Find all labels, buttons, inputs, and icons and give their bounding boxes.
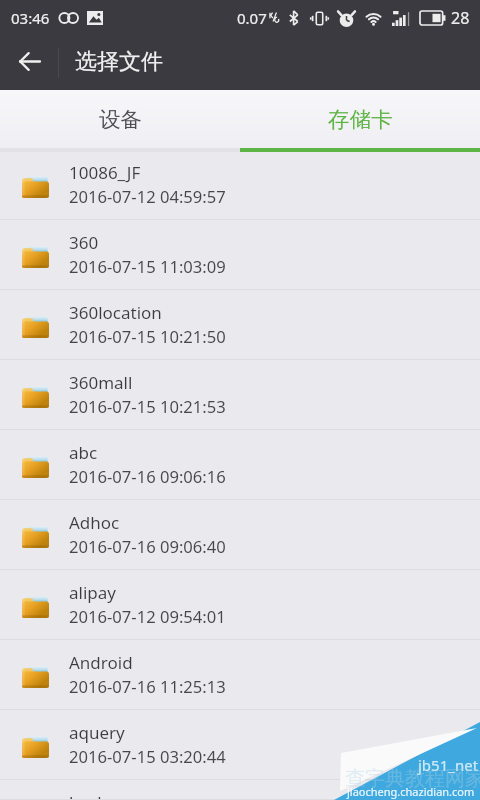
staticText: 2016-07-15 11:03:09 xyxy=(69,255,226,278)
staticText: abc xyxy=(69,441,98,464)
staticText: 2016-07-15 10:21:50 xyxy=(69,325,226,348)
staticText: alipay xyxy=(69,581,116,604)
staticText: 2016-07-16 09:06:16 xyxy=(69,465,226,488)
button[interactable]: 360mall xyxy=(0,360,480,430)
staticText: 03:46 xyxy=(11,8,50,28)
staticText: 360location xyxy=(69,301,162,324)
button[interactable]: 10086_JF xyxy=(0,150,480,220)
staticText: 28 xyxy=(451,7,470,29)
staticText: aquery xyxy=(69,721,125,744)
staticText: Adhoc xyxy=(69,511,120,534)
staticText: 2016-07-16 11:25:13 xyxy=(69,675,226,698)
button[interactable]: Adhoc xyxy=(0,500,480,570)
button[interactable]: 存储卡 xyxy=(240,90,480,150)
staticText: 选择文件 xyxy=(75,48,163,76)
button[interactable]: 360location xyxy=(0,290,480,360)
staticText: 存储卡 xyxy=(328,106,393,133)
button[interactable]: 360 xyxy=(0,220,480,290)
button[interactable]: Android xyxy=(0,640,480,710)
button[interactable]: 设备 xyxy=(0,90,240,150)
button[interactable]: abc xyxy=(0,430,480,500)
button[interactable]: aquery xyxy=(0,710,480,780)
staticText: 2016-07-12 04:59:57 xyxy=(69,185,226,208)
button[interactable]: backup xyxy=(0,780,480,800)
staticText: jiaocheng.chazidian.com xyxy=(347,784,475,799)
staticText: 2016-07-16 09:06:40 xyxy=(69,535,226,558)
button[interactable]: Back xyxy=(0,36,58,90)
staticText: 2016-07-12 09:54:01 xyxy=(69,605,226,628)
staticText: 查字典教程网家 xyxy=(345,766,480,791)
staticText: 2016-07-15 10:21:53 xyxy=(69,395,226,418)
staticText: jb51_net xyxy=(418,755,479,775)
staticText: 设备 xyxy=(99,106,142,133)
staticText: backup xyxy=(69,791,128,800)
staticText: 2016-07-15 03:20:44 xyxy=(69,745,226,768)
staticText: 360 xyxy=(69,231,99,254)
staticText: 10086_JF xyxy=(69,161,141,184)
staticText: 0.07 xyxy=(237,8,267,28)
button[interactable]: alipay xyxy=(0,570,480,640)
staticText: 360mall xyxy=(69,371,133,394)
staticText: Android xyxy=(69,651,133,674)
